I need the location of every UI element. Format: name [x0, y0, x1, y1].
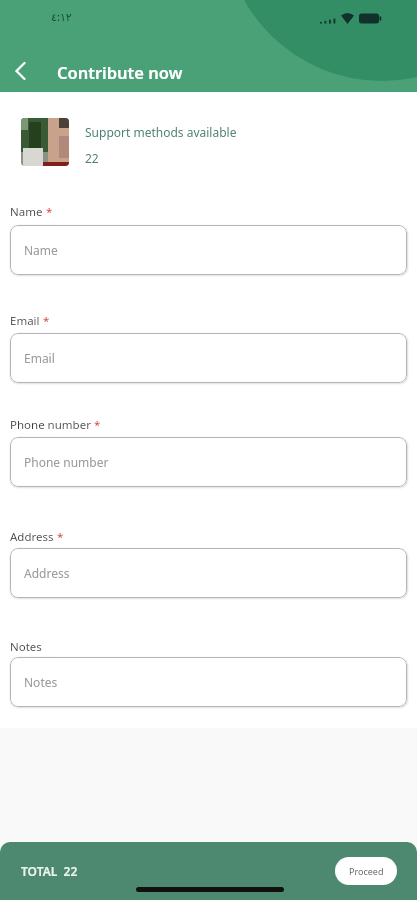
staticText: Notes — [24, 674, 58, 690]
button[interactable]: Notes — [10, 657, 407, 707]
staticText: * — [91, 417, 101, 433]
button[interactable]: Name — [10, 225, 407, 275]
staticText: Email — [24, 350, 55, 366]
staticText: Email — [10, 313, 40, 329]
staticText: ٤:١٢ — [51, 9, 72, 24]
button[interactable] — [4, 53, 40, 89]
staticText: Name — [24, 242, 58, 258]
staticText: * — [43, 204, 53, 220]
staticText: Phone number — [24, 454, 109, 470]
staticText: Support methods available — [85, 124, 237, 140]
staticText: * — [54, 529, 64, 545]
button[interactable]: Phone number — [10, 437, 407, 487]
staticText: Proceed — [349, 865, 384, 877]
staticText: TOTAL 22 — [21, 863, 78, 879]
staticText: Name — [10, 204, 43, 220]
button[interactable]: Support methods available — [10, 112, 400, 174]
staticText: Notes — [10, 639, 42, 655]
staticText: 22 — [85, 150, 99, 166]
button[interactable]: Proceed — [335, 857, 397, 885]
staticText: * — [40, 313, 50, 329]
staticText: Address — [10, 529, 54, 545]
staticText: Address — [24, 565, 70, 581]
button[interactable]: Email — [10, 333, 407, 383]
staticText: Contribute now — [57, 61, 183, 83]
staticText: Phone number — [10, 417, 91, 433]
button[interactable]: Address — [10, 548, 407, 598]
